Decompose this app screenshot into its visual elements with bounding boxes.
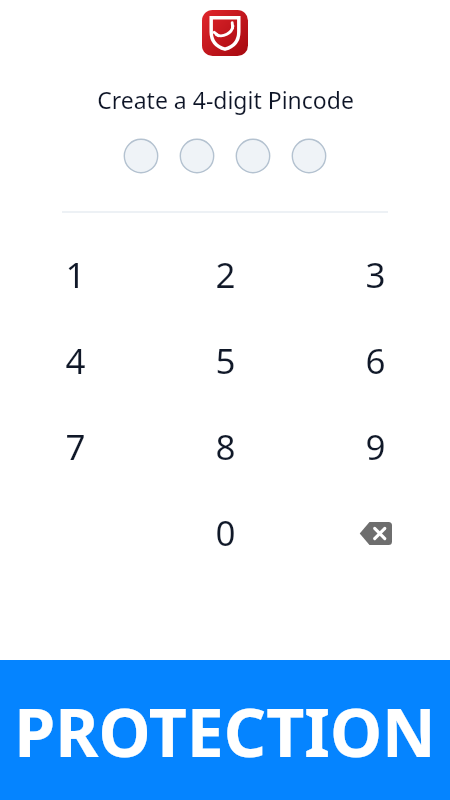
button[interactable]: 5 xyxy=(150,318,300,404)
button[interactable]: 3 xyxy=(300,232,450,318)
staticText: PROTECTION xyxy=(14,686,436,776)
staticText: 7 xyxy=(65,423,86,471)
button[interactable]: 6 xyxy=(300,318,450,404)
button[interactable]: 0 xyxy=(150,490,300,576)
staticText: 2 xyxy=(215,251,236,299)
staticText: 4 xyxy=(65,337,86,385)
button[interactable]: 7 xyxy=(0,404,150,490)
button[interactable]: Backspace xyxy=(300,490,450,576)
button[interactable]: 4 xyxy=(0,318,150,404)
staticText: 1 xyxy=(65,251,86,299)
button[interactable]: 2 xyxy=(150,232,300,318)
staticText: 0 xyxy=(215,509,236,557)
staticText: 3 xyxy=(365,251,386,299)
staticText: 9 xyxy=(365,423,386,471)
staticText: 5 xyxy=(215,337,236,385)
staticText: Create a 4-digit Pincode xyxy=(97,84,354,115)
staticText: 6 xyxy=(365,337,386,385)
button[interactable]: PROTECTION xyxy=(0,660,450,800)
button[interactable]: 9 xyxy=(300,404,450,490)
staticText: 8 xyxy=(215,423,236,471)
button[interactable]: 8 xyxy=(150,404,300,490)
button[interactable]: 1 xyxy=(0,232,150,318)
